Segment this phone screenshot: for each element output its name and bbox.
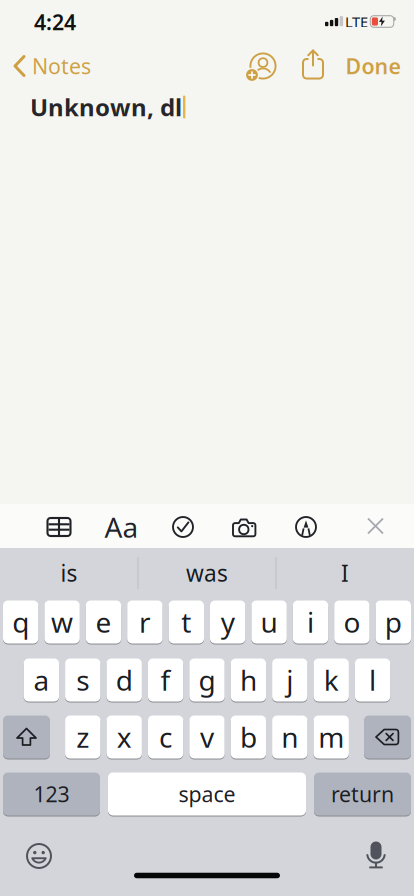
staticText: d (116, 661, 133, 699)
staticText: Notes (32, 52, 91, 80)
button[interactable]: space (108, 772, 306, 816)
staticText: a (33, 661, 49, 699)
button[interactable]: e (86, 600, 121, 644)
staticText: 123 (33, 780, 69, 808)
button[interactable]: n (272, 715, 307, 759)
button[interactable]: q (3, 600, 38, 644)
button[interactable]: f (148, 658, 183, 702)
staticText: g (198, 661, 215, 699)
staticText: v (200, 718, 214, 756)
staticText: is (60, 558, 77, 588)
button[interactable]: return (314, 772, 411, 816)
staticText: m (318, 718, 344, 756)
staticText: u (261, 603, 278, 641)
button[interactable]: z (65, 715, 100, 759)
button[interactable]: Notes (13, 52, 91, 80)
staticText: i (307, 603, 314, 641)
staticText: l (369, 661, 376, 699)
button[interactable]: Formatting (104, 508, 138, 546)
staticText: LTE (345, 12, 368, 32)
staticText: z (76, 718, 89, 756)
button[interactable]: d (106, 658, 142, 702)
button[interactable]: Add people (246, 52, 278, 82)
button[interactable]: r (127, 600, 163, 644)
button[interactable]: k (313, 658, 349, 702)
button[interactable]: t (169, 600, 204, 644)
staticText: Aa (104, 508, 138, 546)
staticText: r (139, 603, 151, 641)
staticText: q (12, 603, 29, 641)
button[interactable]: m (313, 715, 349, 759)
staticText: w (51, 603, 73, 641)
staticText: Unknown, dl (30, 91, 182, 123)
button[interactable]: was (142, 553, 272, 593)
staticText: c (159, 718, 172, 756)
button[interactable]: v (189, 715, 225, 759)
staticText: t (181, 603, 191, 641)
button[interactable]: c (148, 715, 183, 759)
staticText: Done (345, 52, 400, 80)
staticText: was (186, 558, 228, 588)
button[interactable]: j (272, 658, 307, 702)
staticText: space (178, 780, 235, 808)
staticText: s (76, 661, 89, 699)
button[interactable]: 123 (3, 772, 100, 816)
button[interactable]: I (280, 553, 410, 593)
button[interactable]: x (106, 715, 142, 759)
staticText: j (286, 661, 293, 699)
staticText: e (95, 603, 111, 641)
button[interactable]: g (189, 658, 225, 702)
staticText: p (385, 603, 402, 641)
staticText: f (161, 661, 171, 699)
button[interactable]: i (293, 600, 328, 644)
button[interactable]: Delete (364, 715, 411, 759)
button[interactable]: Done (345, 52, 400, 80)
staticText: k (324, 661, 339, 699)
button[interactable]: w (44, 600, 80, 644)
button[interactable]: Markup (295, 516, 317, 538)
button[interactable]: u (251, 600, 287, 644)
staticText: return (331, 780, 394, 808)
staticText: x (117, 718, 132, 756)
staticText: I (341, 558, 349, 588)
staticText: o (343, 603, 360, 641)
button[interactable]: s (65, 658, 100, 702)
button[interactable]: h (231, 658, 266, 702)
button[interactable]: Checklist (172, 516, 194, 538)
button[interactable]: a (24, 658, 59, 702)
staticText: y (221, 603, 235, 641)
button[interactable]: y (210, 600, 245, 644)
button[interactable]: Insert photo (232, 518, 257, 537)
button[interactable]: Insert table (47, 518, 70, 536)
button[interactable]: Shift (3, 715, 50, 759)
button[interactable]: Share (302, 49, 323, 79)
button[interactable]: o (334, 600, 370, 644)
staticText: n (281, 718, 298, 756)
button[interactable]: l (355, 658, 390, 702)
button[interactable]: p (376, 600, 411, 644)
button[interactable]: b (231, 715, 266, 759)
staticText: b (240, 718, 257, 756)
staticText: 4:24 (34, 8, 76, 36)
button[interactable]: Emoji (26, 843, 52, 869)
button[interactable]: is (4, 553, 134, 593)
staticText: h (240, 661, 257, 699)
button[interactable]: Dismiss toolbar (367, 517, 384, 534)
button[interactable]: Dictate (366, 841, 385, 869)
